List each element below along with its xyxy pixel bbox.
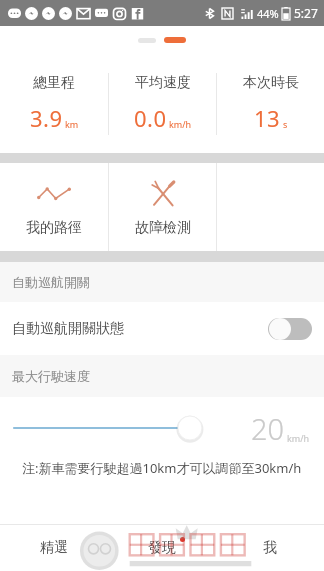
button[interactable]: 精選: [0, 525, 108, 571]
staticText: 13: [254, 103, 281, 133]
staticText: 本次時長: [243, 74, 299, 92]
staticText: 平均速度: [135, 74, 191, 92]
staticText: 注:新車需要行駛超過10km才可以調節至30km/h: [22, 459, 302, 477]
staticText: 5:27: [294, 5, 318, 21]
staticText: 自動巡航開關狀態: [12, 320, 124, 338]
staticText: 發現: [148, 539, 176, 557]
staticText: 最大行駛速度: [12, 368, 90, 384]
button[interactable]: 發現: [108, 525, 216, 571]
staticText: s: [283, 118, 288, 130]
button[interactable]: 我: [216, 525, 324, 571]
staticText: 0.0: [134, 103, 167, 133]
staticText: 20: [251, 409, 285, 448]
staticText: km/h: [169, 118, 192, 130]
staticText: km: [65, 118, 79, 130]
staticText: 自動巡航開關: [12, 274, 90, 290]
staticText: 總里程: [33, 74, 75, 92]
staticText: 3.9: [30, 103, 63, 133]
staticText: 精選: [40, 539, 68, 557]
staticText: 我: [263, 539, 277, 557]
button[interactable]: 我的路徑: [0, 163, 108, 251]
staticText: 44%: [257, 6, 279, 21]
button[interactable]: [14, 408, 241, 448]
staticText: km/h: [287, 432, 310, 444]
staticText: 故障檢測: [135, 219, 191, 237]
button[interactable]: 故障檢測: [109, 163, 216, 251]
button[interactable]: 自動巡航開關狀態: [0, 302, 324, 355]
staticText: 我的路徑: [26, 219, 82, 237]
